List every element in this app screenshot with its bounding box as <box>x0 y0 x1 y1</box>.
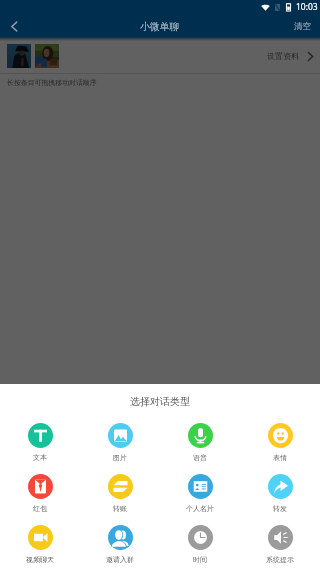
staticText: 设置资料 <box>267 51 299 61</box>
button[interactable]: Avatar 2 <box>35 44 59 68</box>
staticText: 红包 <box>33 504 47 513</box>
staticText: 视频聊天 <box>26 555 54 564</box>
button[interactable]: 个人名片 <box>160 474 240 525</box>
button[interactable]: 转账 <box>80 474 160 525</box>
button[interactable]: 红包 <box>0 474 80 525</box>
staticText: 选择对话类型 <box>0 395 320 408</box>
staticText: 长按条目可拖拽移动对话顺序 <box>7 78 97 87</box>
staticText: 小微单聊 <box>140 21 180 33</box>
button[interactable]: 视频聊天 <box>0 525 80 570</box>
button[interactable]: 清空 <box>284 16 320 37</box>
button[interactable]: 转发 <box>240 474 320 525</box>
button[interactable]: 系统提示 <box>240 525 320 570</box>
staticText: 个人名片 <box>186 504 214 513</box>
staticText: 语音 <box>193 453 207 462</box>
button[interactable]: 文本 <box>0 423 80 474</box>
staticText: 转发 <box>273 504 287 513</box>
button[interactable]: 设置资料 <box>259 45 320 67</box>
button[interactable]: 时间 <box>160 525 240 570</box>
button[interactable]: 语音 <box>160 423 240 474</box>
staticText: 10:03 <box>296 1 318 13</box>
button[interactable]: 图片 <box>80 423 160 474</box>
staticText: 转账 <box>113 504 127 513</box>
button[interactable]: Back <box>0 12 28 40</box>
staticText: 清空 <box>294 21 311 32</box>
staticText: 表情 <box>273 453 287 462</box>
staticText: 图片 <box>113 453 127 462</box>
button[interactable]: 表情 <box>240 423 320 474</box>
button[interactable]: Avatar 1 <box>7 44 31 68</box>
staticText: 系统提示 <box>266 555 294 564</box>
staticText: 时间 <box>193 555 207 564</box>
staticText: 文本 <box>33 453 47 462</box>
staticText: 邀请入群 <box>106 555 134 564</box>
button[interactable]: 邀请入群 <box>80 525 160 570</box>
